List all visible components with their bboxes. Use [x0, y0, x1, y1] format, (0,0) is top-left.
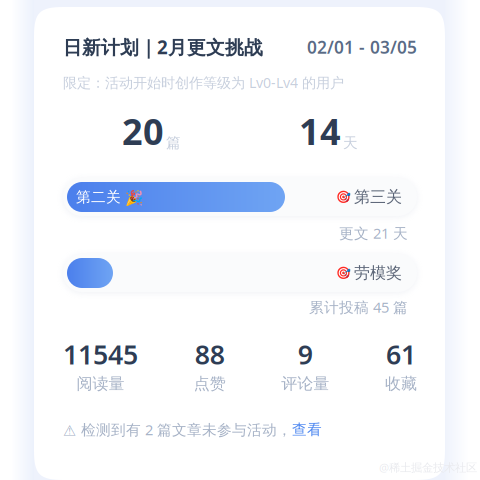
staticText: 🎯: [336, 266, 351, 280]
button[interactable]: 第二关 🎉: [63, 178, 417, 216]
staticText: 88: [195, 336, 225, 372]
staticText: 限定：活动开始时创作等级为 Lv0-Lv4 的用户: [63, 73, 344, 92]
staticText: 02/01 - 03/05: [307, 35, 417, 58]
staticText: 61: [386, 336, 416, 372]
staticText: 第二关 🎉: [76, 188, 143, 206]
staticText: 第三关: [354, 187, 402, 207]
staticText: 更文 21 天: [339, 223, 408, 243]
staticText: 点赞: [194, 374, 226, 394]
staticText: ⚠ 检测到有 2 篇文章未参与活动，: [63, 420, 292, 439]
staticText: @稀土掘金技术社区: [379, 460, 477, 475]
staticText: 9: [298, 336, 313, 372]
staticText: 阅读量: [76, 374, 124, 394]
staticText: 日新计划｜2月更文挑战: [63, 35, 263, 59]
staticText: 累计投稿 45 篇: [309, 297, 408, 317]
staticText: 查看: [292, 420, 322, 438]
button[interactable]: [63, 254, 417, 292]
staticText: 收藏: [385, 374, 417, 394]
staticText: 20: [122, 107, 164, 155]
staticText: 🎯: [336, 190, 351, 204]
staticText: 评论量: [281, 374, 329, 394]
staticText: 篇: [166, 134, 181, 152]
staticText: 天: [343, 134, 358, 152]
staticText: 11545: [63, 336, 138, 372]
staticText: 劳模奖: [354, 263, 402, 283]
button[interactable]: ⚠ 检测到有 2 篇文章未参与活动，: [63, 422, 417, 437]
staticText: 14: [299, 107, 341, 155]
